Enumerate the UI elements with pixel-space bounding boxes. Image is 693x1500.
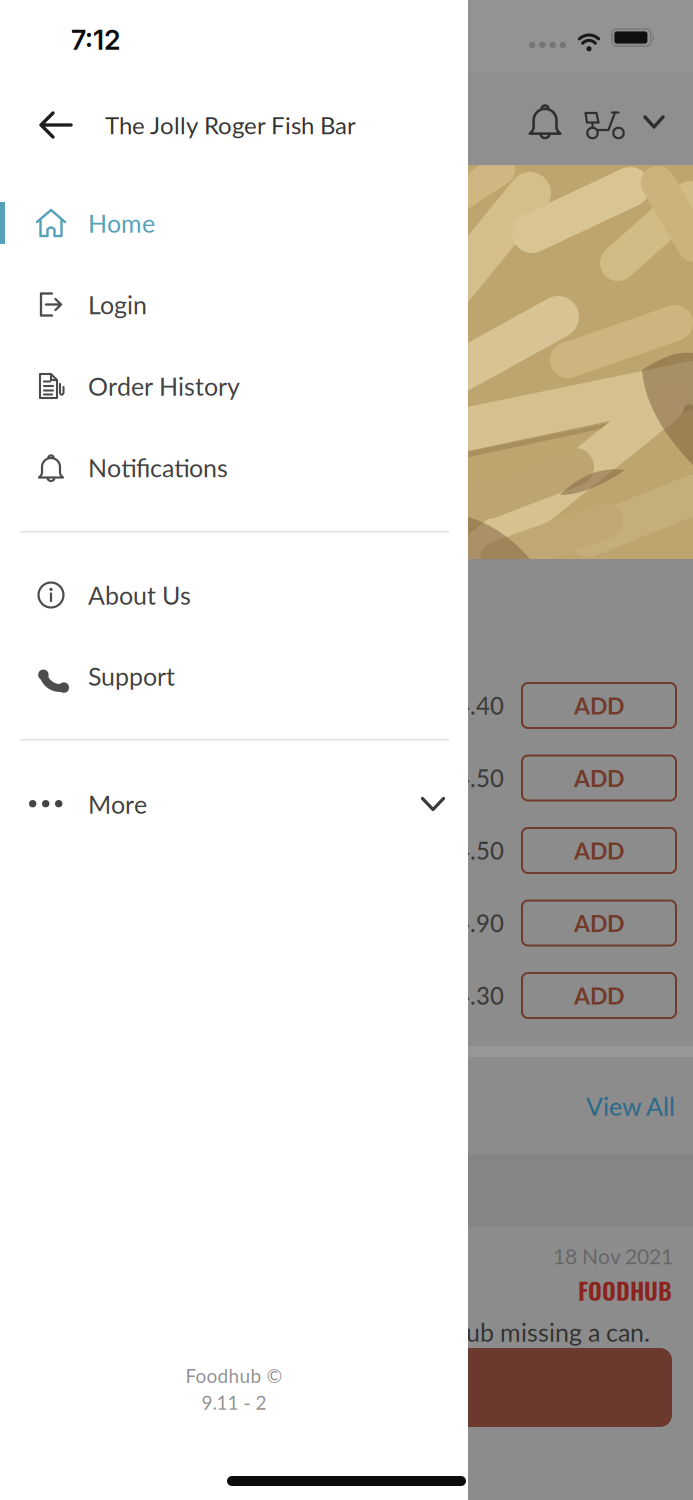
staticText: 4.40 bbox=[456, 691, 504, 720]
button[interactable]: Home bbox=[0, 191, 450, 255]
staticText: 9.11 - 2 bbox=[201, 1391, 266, 1414]
staticText: ADD bbox=[574, 692, 624, 719]
button[interactable]: Login bbox=[0, 272, 450, 336]
button[interactable]: Notifications bbox=[0, 435, 450, 499]
button[interactable]: Notifications bbox=[521, 97, 569, 145]
staticText: Foodhub © bbox=[185, 1364, 282, 1387]
staticText: Home bbox=[88, 208, 155, 238]
button[interactable]: ADD bbox=[522, 973, 676, 1018]
staticText: ADD bbox=[574, 909, 624, 937]
staticText: ADD bbox=[574, 837, 624, 864]
staticText: About Us bbox=[88, 580, 191, 610]
button[interactable]: About Us bbox=[0, 563, 450, 627]
staticText: ADD bbox=[574, 982, 624, 1009]
staticText: 4.30 bbox=[456, 981, 504, 1010]
button[interactable]: More options bbox=[636, 100, 672, 144]
button[interactable]: Back bbox=[32, 103, 80, 147]
button[interactable]: More bbox=[0, 772, 450, 836]
staticText: More bbox=[88, 789, 147, 819]
staticText: The Jolly Roger Fish Bar bbox=[105, 111, 356, 139]
staticText: Order History bbox=[88, 371, 240, 401]
button[interactable]: Support bbox=[0, 644, 450, 708]
staticText: 7:12 bbox=[71, 24, 120, 56]
staticText: Login bbox=[88, 289, 147, 319]
staticText: ADD bbox=[574, 764, 624, 792]
button[interactable]: ADD bbox=[522, 828, 676, 873]
staticText: View All bbox=[586, 1091, 675, 1121]
staticText: 4.90 bbox=[456, 909, 504, 937]
staticText: Support bbox=[88, 661, 175, 691]
staticText: 4.50 bbox=[456, 764, 504, 792]
button[interactable]: ADD bbox=[522, 683, 676, 728]
button[interactable]: Reorder bbox=[442, 1348, 672, 1427]
staticText: ub missing a can. bbox=[466, 1317, 650, 1347]
button[interactable]: ADD bbox=[522, 755, 676, 800]
staticText: FOODHUB bbox=[578, 1272, 672, 1308]
button[interactable]: Order History bbox=[0, 354, 450, 418]
staticText: 4.50 bbox=[456, 836, 504, 865]
button[interactable]: Delivery bbox=[578, 98, 630, 146]
staticText: 18 Nov 2021 bbox=[553, 1243, 673, 1269]
button[interactable]: ADD bbox=[522, 900, 676, 945]
button[interactable]: View All bbox=[515, 1086, 675, 1126]
staticText: Notifications bbox=[88, 452, 228, 482]
